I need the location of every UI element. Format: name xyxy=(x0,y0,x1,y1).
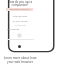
button[interactable]: Get started xyxy=(7,28,27,31)
button[interactable]: on your phone xyxy=(6,20,34,23)
staticText: companion mode on xyxy=(9,8,30,11)
staticText: Learn more about how to use xyxy=(3,56,37,60)
button[interactable]: companion mode on xyxy=(6,8,33,11)
button[interactable]: Home xyxy=(18,45,21,48)
staticText: your web browser xyxy=(3,60,37,64)
staticText: on your phone xyxy=(6,20,34,23)
button[interactable]: Learn more about how to use xyxy=(3,56,37,60)
staticText: Get started xyxy=(7,28,20,31)
button[interactable]: How do you use a web xyxy=(6,0,34,4)
staticText: to continue xyxy=(6,24,34,27)
staticText: Scan QR code xyxy=(6,15,34,18)
button[interactable]: Profile xyxy=(17,33,22,38)
staticText: How do you use a web xyxy=(6,0,34,4)
staticText: companion? xyxy=(6,3,34,7)
button[interactable]: Scan QR code xyxy=(6,15,34,18)
